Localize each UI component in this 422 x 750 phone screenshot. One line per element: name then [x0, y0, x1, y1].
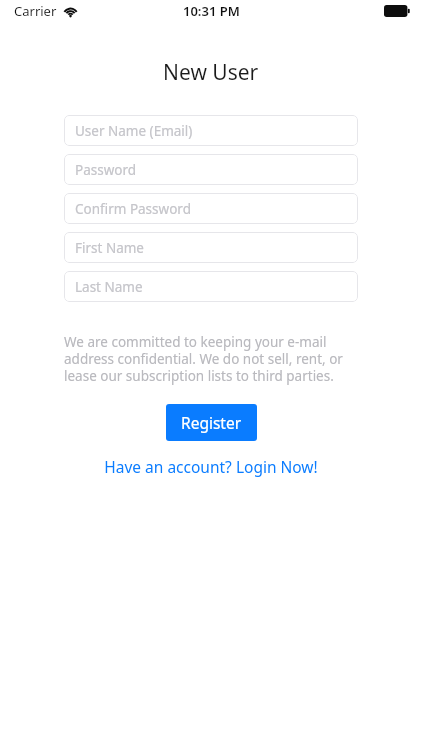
staticText: We are committed to keeping your e-mail … — [64, 333, 358, 385]
staticText: User Name (Email) — [75, 122, 193, 140]
staticText: Password — [75, 161, 137, 179]
staticText: First Name — [75, 239, 144, 257]
staticText: 10:31 PM — [183, 2, 240, 20]
other: Wi-Fi signal — [63, 6, 78, 17]
button[interactable]: Last Name — [64, 271, 358, 302]
staticText: Have an account? Login Now! — [104, 456, 318, 477]
button[interactable]: Password — [64, 154, 358, 185]
button[interactable]: Have an account? Login Now! — [96, 452, 326, 481]
staticText: Confirm Password — [75, 200, 191, 218]
button[interactable]: Register — [166, 404, 257, 441]
staticText: Carrier — [14, 2, 57, 20]
staticText: Last Name — [75, 278, 143, 296]
staticText: Register — [181, 412, 242, 433]
button[interactable]: Confirm Password — [64, 193, 358, 224]
button[interactable]: First Name — [64, 232, 358, 263]
button[interactable]: User Name (Email) — [64, 115, 358, 146]
staticText: New User — [163, 58, 259, 87]
other: Battery full — [384, 5, 410, 17]
